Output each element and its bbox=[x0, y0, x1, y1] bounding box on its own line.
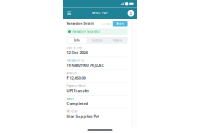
button[interactable]: Share bbox=[113, 21, 128, 26]
staticText: Transaction Successful bbox=[72, 30, 100, 33]
staticText: History bbox=[112, 39, 121, 42]
staticText: Payment Mode bbox=[66, 84, 86, 88]
staticText: Date & Time bbox=[66, 46, 82, 49]
staticText: Share bbox=[116, 22, 124, 25]
staticText: UPI Transfer bbox=[66, 88, 89, 93]
staticText: Amount bbox=[66, 71, 77, 75]
staticText: Star Supplies Pvt bbox=[66, 114, 99, 119]
staticText: MYBIZ PAY bbox=[92, 11, 108, 15]
staticText: 12 Oct 2024 bbox=[66, 50, 87, 55]
button[interactable]: Menu bbox=[66, 10, 73, 17]
button[interactable]: Account bbox=[127, 10, 134, 17]
staticText: Transaction Details bbox=[66, 22, 93, 25]
staticText: Receipt bbox=[91, 39, 102, 42]
button[interactable]: History bbox=[107, 38, 127, 43]
button[interactable]: Receipt bbox=[87, 38, 107, 43]
staticText: Transaction ID bbox=[66, 59, 84, 62]
staticText: TXN4821903 7KJ2-AC bbox=[66, 63, 104, 68]
button[interactable]: Info bbox=[67, 38, 87, 43]
staticText: Info bbox=[74, 39, 80, 42]
staticText: 12 Oct bbox=[101, 22, 110, 25]
staticText: Merchant bbox=[66, 110, 78, 113]
staticText: Completed bbox=[66, 101, 88, 106]
staticText: ₹ 12,450.00 bbox=[66, 75, 85, 81]
staticText: Status bbox=[66, 97, 73, 100]
